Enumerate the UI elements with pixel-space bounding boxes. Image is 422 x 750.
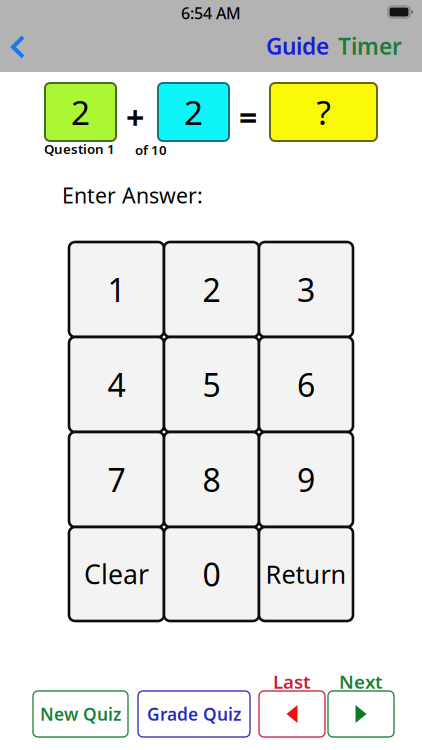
button[interactable]: New Quiz [33,691,128,737]
button[interactable]: 8 [164,432,259,527]
staticText: 6:54 AM [181,2,241,24]
staticText: 3 [297,268,315,311]
button[interactable]: 2 [164,242,259,337]
staticText: 8 [202,458,220,501]
button[interactable]: Back [1,33,35,61]
staticText: 7 [107,458,125,501]
staticText: ? [316,90,330,134]
button[interactable]: Next question [328,691,394,737]
button[interactable]: 3 [259,242,353,337]
staticText: + [126,96,144,138]
button[interactable]: 5 [164,337,259,432]
staticText: 0 [202,553,220,595]
button[interactable]: 6 [259,337,353,432]
button[interactable]: Grade Quiz [138,691,250,737]
button[interactable]: Timer [338,31,402,61]
staticText: Next [339,669,383,694]
staticText: 2 [184,90,203,134]
button[interactable]: Guide [266,31,329,61]
staticText: of 10 [135,141,167,159]
button[interactable]: 9 [259,432,353,527]
button[interactable]: 7 [69,432,164,527]
button[interactable]: 0 [164,527,259,621]
button[interactable]: Return [259,527,353,621]
staticText: Last [273,669,311,694]
staticText: Clear [84,556,149,592]
staticText: 2 [71,90,90,134]
staticText: = [239,96,257,138]
staticText: Guide [266,31,329,61]
staticText: Return [265,557,346,591]
staticText: 4 [107,363,125,406]
button[interactable]: 4 [69,337,164,432]
button[interactable]: Clear [69,527,164,621]
staticText: Timer [338,31,402,61]
staticText: Grade Quiz [147,702,241,725]
staticText: 2 [202,268,220,311]
staticText: Enter Answer: [62,181,203,209]
staticText: 9 [297,458,315,501]
staticText: 5 [202,363,220,406]
button[interactable]: 1 [69,242,164,337]
staticText: 1 [107,268,125,311]
staticText: New Quiz [40,702,121,725]
staticText: 6 [297,363,315,406]
staticText: Question 1 [44,140,115,158]
button[interactable]: Last question [259,691,325,737]
